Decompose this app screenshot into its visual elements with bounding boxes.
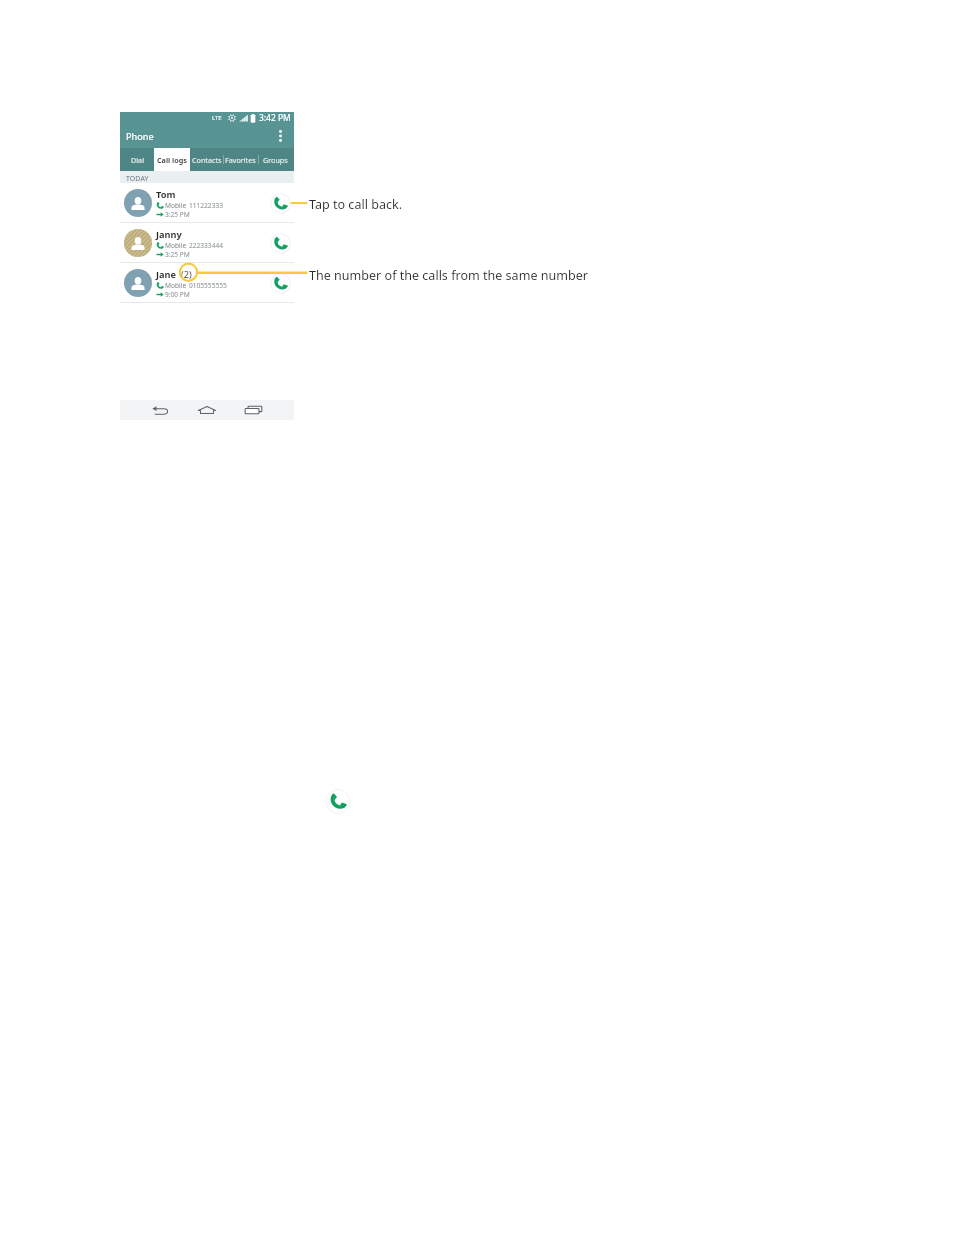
button[interactable]: Call logs <box>154 148 190 171</box>
button[interactable]: Contacts <box>190 148 223 171</box>
button[interactable]: Home <box>192 400 222 420</box>
button[interactable]: Jane <box>120 263 294 303</box>
staticText: Contacts <box>192 155 222 165</box>
staticText: Mobile <box>165 241 187 250</box>
button[interactable]: Back <box>145 400 175 420</box>
staticText: The number of the calls from the same nu… <box>309 267 588 284</box>
staticText: TODAY <box>126 174 149 183</box>
staticText: Call logs <box>157 155 187 165</box>
staticText: Phone <box>126 130 154 143</box>
staticText: Mobile <box>165 281 187 290</box>
button[interactable]: Groups <box>258 148 293 171</box>
staticText: Favorites <box>225 155 256 165</box>
staticText: 0105555555 <box>189 281 227 290</box>
button[interactable]: Recents <box>238 400 269 420</box>
staticText: Jane <box>156 268 177 281</box>
staticText: 111222333 <box>189 201 223 210</box>
staticText: Tom <box>156 188 176 201</box>
staticText: 222333444 <box>189 241 223 250</box>
staticText: Dial <box>131 155 144 165</box>
staticText: 3:25 PM <box>165 250 190 259</box>
button[interactable]: Tom <box>120 183 294 223</box>
button[interactable]: Dial <box>120 148 154 171</box>
staticText: 3:42 PM <box>259 112 291 124</box>
staticText: (2) <box>181 268 192 281</box>
button[interactable]: Call back Tom <box>270 193 291 214</box>
staticText: Groups <box>263 155 288 165</box>
button[interactable]: Call back Jane <box>270 273 291 294</box>
staticText: 9:00 PM <box>165 290 190 299</box>
staticText: Mobile <box>165 201 187 210</box>
button[interactable]: More options <box>266 124 294 148</box>
staticText: LTE <box>212 114 222 122</box>
button[interactable]: Call back Janny <box>270 233 291 254</box>
staticText: Janny <box>156 228 182 241</box>
staticText: 3:25 PM <box>165 210 190 219</box>
button[interactable]: Janny <box>120 223 294 263</box>
button[interactable]: Favorites <box>223 148 258 171</box>
staticText: Tap to call back. <box>309 196 403 213</box>
